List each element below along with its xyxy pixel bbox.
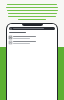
button[interactable]: Open item 1 [7, 35, 57, 40]
button[interactable]: Open item 2 [7, 40, 57, 45]
button[interactable]: Search [9, 27, 55, 30]
